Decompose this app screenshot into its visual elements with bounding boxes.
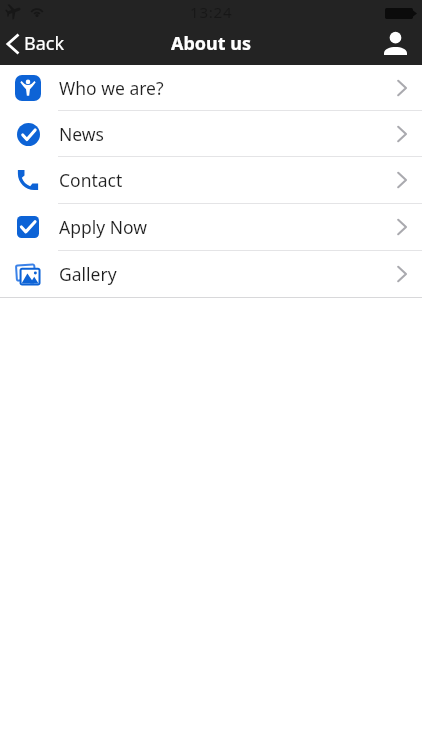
- button[interactable]: Who we are?: [0, 65, 422, 110]
- button[interactable]: Back: [0, 27, 75, 60]
- staticText: About us: [171, 31, 252, 56]
- button[interactable]: Contact: [0, 157, 422, 203]
- button[interactable]: Apply Now: [0, 204, 422, 250]
- staticText: Contact: [59, 168, 123, 192]
- button[interactable]: Gallery: [0, 251, 422, 297]
- staticText: Apply Now: [59, 215, 147, 239]
- staticText: 13:24: [190, 2, 233, 22]
- staticText: News: [59, 122, 104, 146]
- button[interactable]: Profile: [369, 24, 422, 63]
- button[interactable]: News: [0, 111, 422, 156]
- staticText: Gallery: [59, 262, 117, 286]
- staticText: Back: [24, 31, 65, 56]
- staticText: Who we are?: [59, 76, 164, 100]
